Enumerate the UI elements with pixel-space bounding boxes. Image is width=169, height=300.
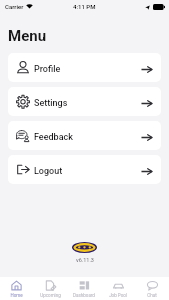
staticText: Carrier — [5, 3, 24, 10]
button[interactable]: Chat — [135, 277, 169, 300]
staticText: Chat — [147, 293, 157, 298]
staticText: 4:11 PM — [73, 3, 96, 10]
staticText: v6.11.3 — [76, 257, 94, 263]
button[interactable]: Settings — [8, 87, 161, 116]
staticText: Dashboard — [73, 293, 95, 298]
staticText: Settings — [34, 98, 68, 109]
staticText: Upcoming — [40, 293, 61, 298]
button[interactable]: Feedback — [8, 121, 161, 150]
button[interactable]: Home — [0, 277, 33, 300]
button[interactable]: Dashboard — [67, 277, 101, 300]
staticText: Profile — [34, 64, 61, 75]
button[interactable]: Logout — [8, 155, 161, 184]
staticText: Logout — [34, 166, 63, 177]
button[interactable]: Profile — [8, 53, 161, 82]
button[interactable]: Upcoming — [33, 277, 67, 300]
staticText: Job Pool — [109, 293, 127, 298]
staticText: Feedback — [34, 132, 73, 143]
button[interactable]: Job Pool — [101, 277, 135, 300]
staticText: Home — [10, 293, 23, 298]
staticText: Menu — [8, 27, 47, 45]
